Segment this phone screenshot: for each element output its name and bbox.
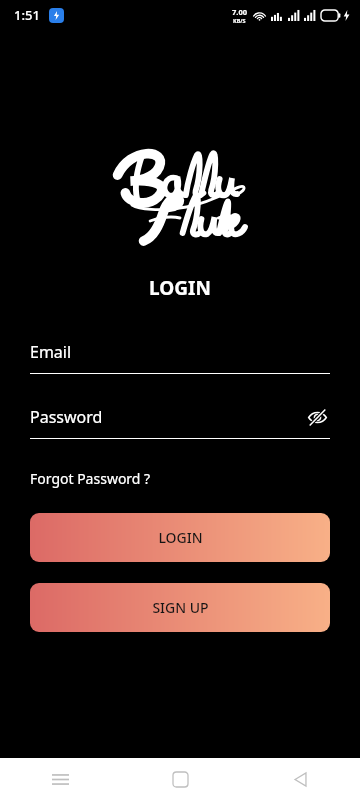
- staticText: Email: [30, 341, 72, 363]
- staticText: SIGN UP: [152, 598, 209, 617]
- staticText: 7.00: [232, 7, 247, 17]
- button[interactable]: Show password: [304, 404, 330, 430]
- button[interactable]: Back: [240, 758, 360, 800]
- staticText: Password: [30, 406, 103, 428]
- button[interactable]: Password: [30, 404, 330, 439]
- button[interactable]: Email: [30, 339, 330, 374]
- staticText: LOGIN: [149, 275, 211, 301]
- button[interactable]: LOGIN: [30, 513, 330, 562]
- button[interactable]: Forgot Password ?: [30, 467, 151, 490]
- button[interactable]: SIGN UP: [30, 583, 330, 632]
- staticText: Forgot Password ?: [30, 469, 151, 488]
- button[interactable]: Home: [120, 758, 240, 800]
- staticText: LOGIN: [158, 528, 203, 547]
- staticText: 1:51: [14, 6, 40, 24]
- staticText: KB/S: [233, 17, 246, 24]
- button[interactable]: Recent apps: [0, 758, 120, 800]
